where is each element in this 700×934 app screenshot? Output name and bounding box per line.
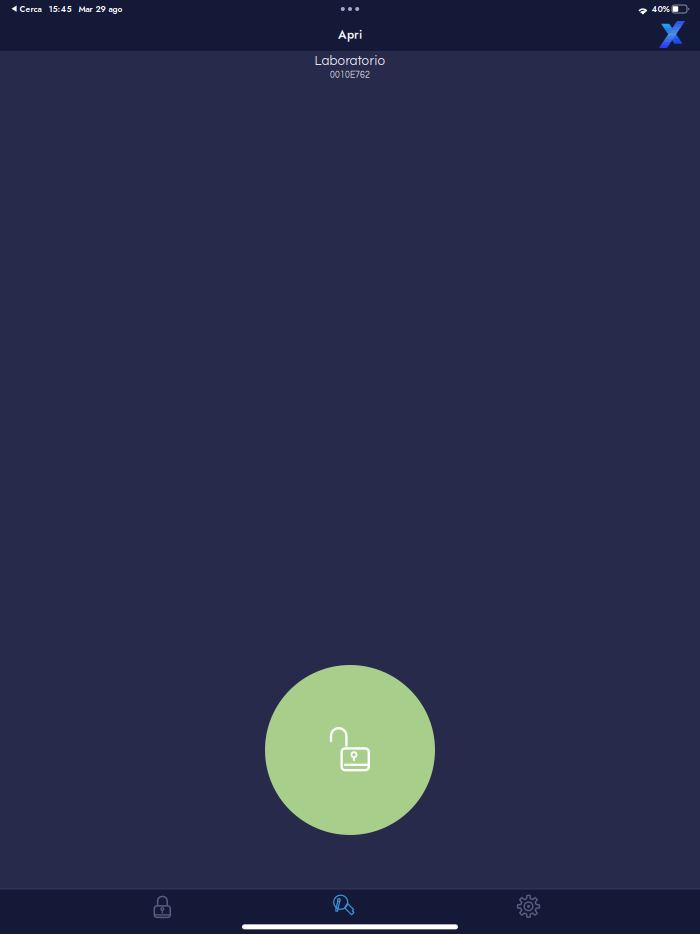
button[interactable]: Account xyxy=(655,17,689,52)
staticText: 40% xyxy=(651,3,669,15)
button[interactable]: Blocca xyxy=(71,894,254,918)
button[interactable]: Apri serratura xyxy=(265,665,435,835)
staticText: 0010E762 xyxy=(330,71,370,80)
button[interactable]: Apri xyxy=(254,894,437,918)
staticText: Laboratorio xyxy=(314,54,385,68)
button[interactable]: Impostazioni xyxy=(437,894,620,918)
staticText: Cerca xyxy=(19,3,41,15)
staticText: Mar 29 ago xyxy=(78,3,122,15)
staticText: Apri xyxy=(338,26,362,43)
staticText: 15:45 xyxy=(48,3,71,15)
